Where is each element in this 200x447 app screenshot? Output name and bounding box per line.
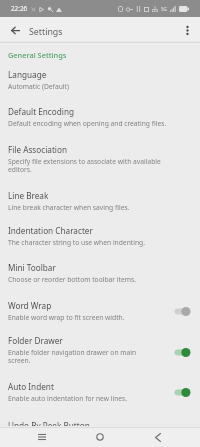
button[interactable]: Toggle off xyxy=(165,304,191,319)
button[interactable]: Toggle on xyxy=(165,385,191,400)
staticText: Automatic (Default) xyxy=(8,82,69,91)
staticText: The character string to use when indenti… xyxy=(8,238,145,247)
button[interactable]: Folder Drawer xyxy=(0,336,200,382)
button[interactable]: Word Wrap xyxy=(0,301,200,336)
staticText: Settings xyxy=(29,26,63,38)
staticText: Choose or reorder bottom toolbar items. xyxy=(8,275,136,284)
staticText: Specify file extensions to associate wit… xyxy=(8,157,175,174)
button[interactable]: Home xyxy=(88,427,112,447)
staticText: Default encoding when opening and creati… xyxy=(8,119,167,128)
button[interactable]: Mini Toolbar xyxy=(0,263,200,301)
staticText: Default Encoding xyxy=(8,106,74,117)
staticText: Folder Drawer xyxy=(8,335,63,346)
staticText: Auto Indent xyxy=(8,381,54,392)
button[interactable]: Line Break xyxy=(0,191,200,226)
staticText: General Settings xyxy=(8,50,67,60)
staticText: Line Break xyxy=(8,190,49,201)
button[interactable]: Back xyxy=(146,427,170,447)
staticText: 22:26 xyxy=(11,4,28,13)
button[interactable]: Default Encoding xyxy=(0,107,200,145)
button[interactable]: Auto Indent xyxy=(0,382,200,416)
staticText: Word Wrap xyxy=(8,300,52,311)
staticText: Enable word wrap to fit screen width. xyxy=(8,313,125,322)
staticText: Enable auto indentation for new lines. xyxy=(8,394,128,403)
button[interactable]: Indentation Character xyxy=(0,226,200,263)
staticText: Enable folder navigation drawer on main … xyxy=(8,348,155,365)
button[interactable]: File Association xyxy=(0,145,200,191)
button[interactable]: More options xyxy=(174,17,200,43)
staticText: Line break character when saving files. xyxy=(8,203,130,212)
button[interactable]: Undo By Peek Button xyxy=(0,421,200,427)
staticText: Language xyxy=(8,69,47,80)
staticText: Indentation Character xyxy=(8,225,93,236)
button[interactable]: Recent apps xyxy=(30,427,54,447)
button[interactable]: Language xyxy=(0,70,200,107)
staticText: Undo By Peek Button xyxy=(8,420,90,426)
staticText: File Association xyxy=(8,144,67,155)
button[interactable]: Toggle on xyxy=(165,345,191,360)
button[interactable]: Back xyxy=(2,17,28,43)
staticText: Mini Toolbar xyxy=(8,262,56,273)
staticText: 5G xyxy=(161,6,167,12)
